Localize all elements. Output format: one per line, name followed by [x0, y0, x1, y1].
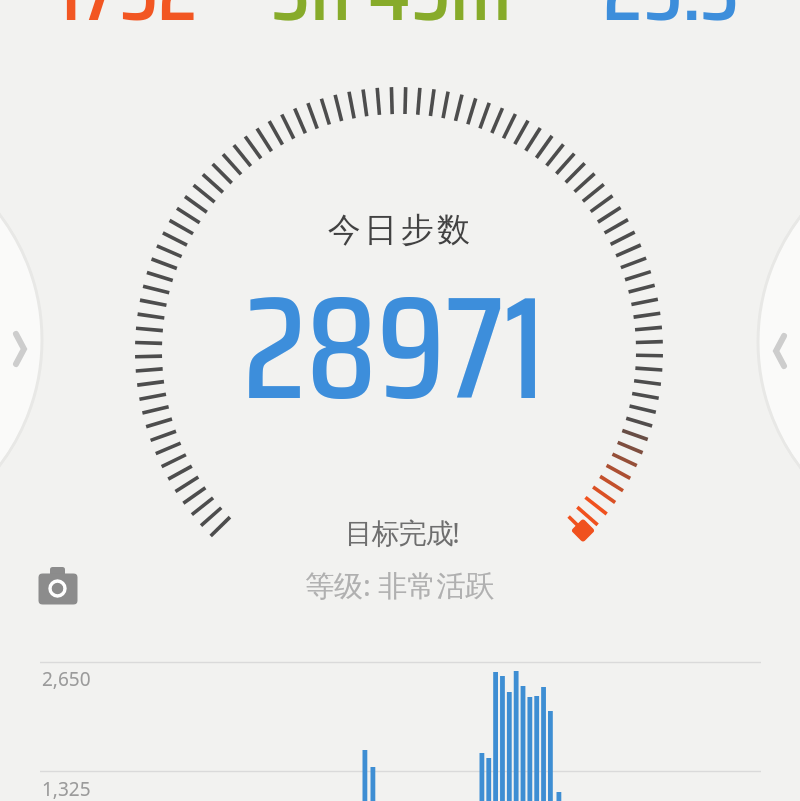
staticText: 等级: 非常活跃 [305, 565, 495, 605]
button[interactable]: 28971 [94, 218, 694, 478]
staticText: 目标完成! [345, 513, 459, 551]
staticText: 28971 [243, 235, 545, 462]
staticText: 3h 45m [272, 0, 512, 60]
staticText: 1752 [56, 0, 198, 60]
staticText: 25.3 [603, 0, 740, 60]
staticText: 1,325 [42, 776, 91, 801]
staticText: 2,650 [42, 666, 91, 692]
staticText: 今日步数 [326, 209, 472, 251]
button[interactable] [30, 560, 86, 612]
